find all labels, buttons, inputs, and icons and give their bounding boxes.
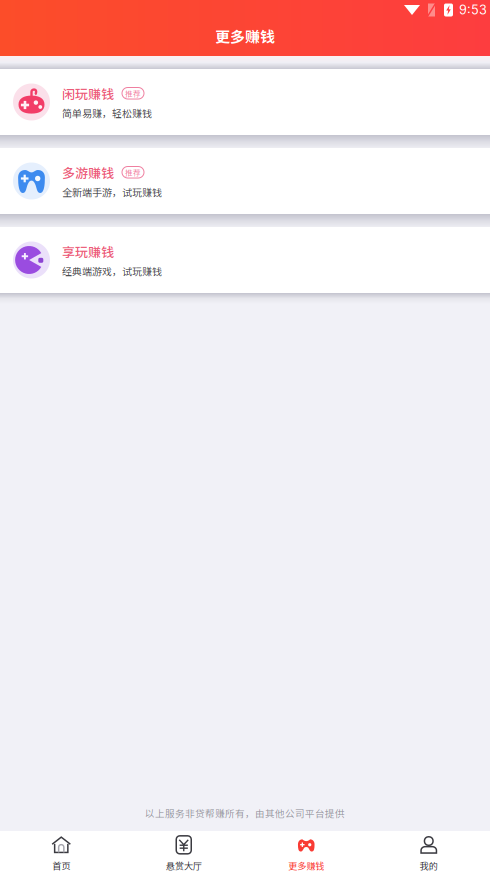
button[interactable]: 享玩赚钱	[0, 227, 490, 293]
staticText: 多游赚钱	[62, 163, 114, 182]
staticText: 更多赚钱	[215, 25, 275, 47]
button[interactable]: 悬赏大厅	[122, 831, 245, 872]
staticText: 首页	[52, 859, 70, 872]
staticText: 闲玩赚钱	[62, 84, 114, 103]
staticText: 更多赚钱	[288, 859, 324, 872]
button[interactable]: 多游赚钱	[0, 148, 490, 214]
button[interactable]: 首页	[0, 831, 122, 872]
staticText: 9:53	[459, 2, 487, 18]
staticText: 简单易赚，轻松赚钱	[62, 106, 152, 120]
staticText: 以上服务非贷帮赚所有，由其他公司平台提供	[145, 806, 345, 820]
staticText: 全新端手游，试玩赚钱	[62, 185, 162, 199]
button[interactable]: 闲玩赚钱	[0, 69, 490, 135]
button[interactable]: 更多赚钱	[245, 831, 367, 872]
staticText: 我的	[420, 859, 438, 872]
staticText: 推荐	[125, 88, 141, 99]
staticText: 享玩赚钱	[62, 242, 114, 261]
staticText: 经典端游戏，试玩赚钱	[62, 264, 162, 278]
staticText: 推荐	[125, 167, 141, 178]
staticText: 悬赏大厅	[166, 859, 202, 872]
button[interactable]: 我的	[367, 831, 490, 872]
